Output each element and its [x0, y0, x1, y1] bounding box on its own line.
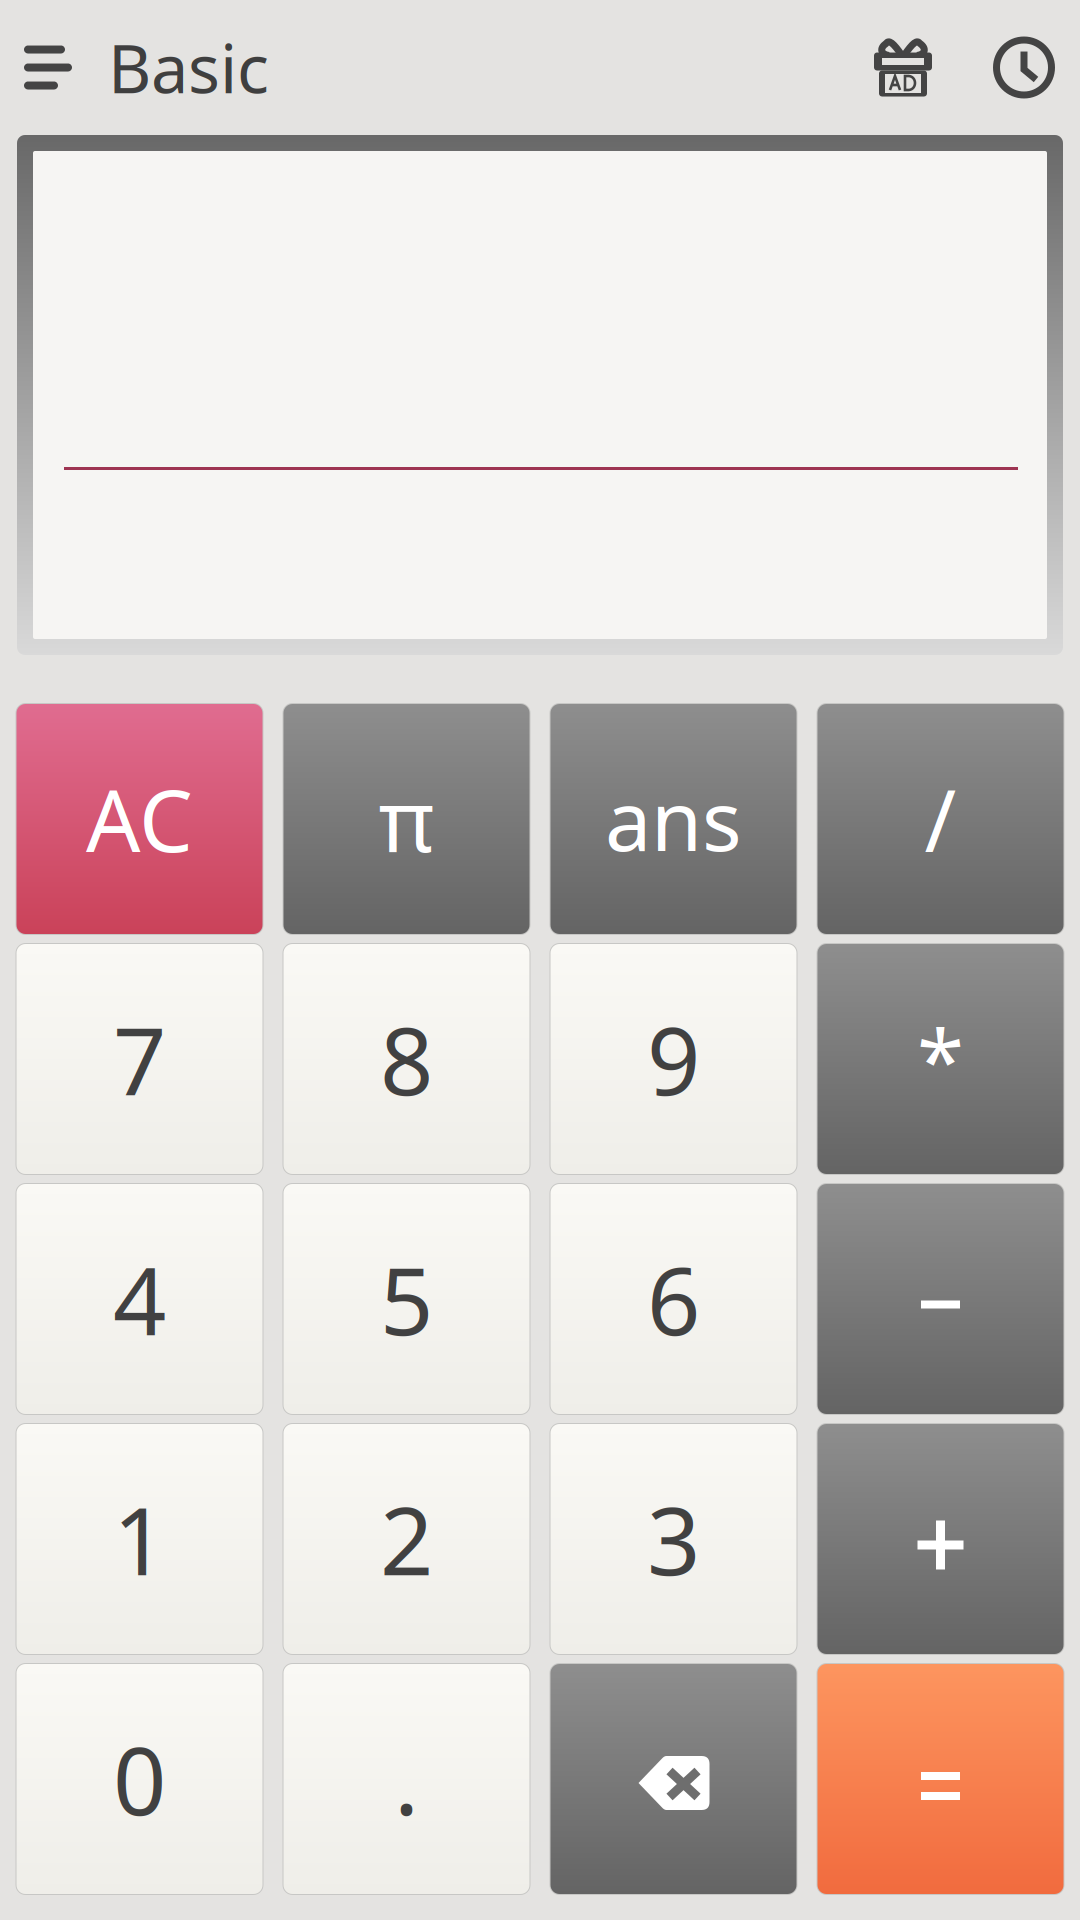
- button[interactable]: π: [283, 704, 529, 934]
- button[interactable]: History: [993, 2, 1080, 132]
- staticText: π: [378, 762, 434, 876]
- button[interactable]: .: [283, 1664, 529, 1894]
- button[interactable]: /: [817, 704, 1063, 934]
- staticText: ans: [605, 764, 742, 874]
- button[interactable]: Ad gift: [874, 2, 993, 132]
- button[interactable]: Plus: [817, 1424, 1063, 1654]
- staticText: *: [917, 1002, 964, 1116]
- button[interactable]: 9: [550, 944, 796, 1174]
- button[interactable]: Menu: [0, 2, 108, 132]
- button[interactable]: 3: [550, 1424, 796, 1654]
- staticText: .: [394, 1717, 419, 1841]
- staticText: AC: [86, 762, 193, 876]
- staticText: 0: [113, 1717, 166, 1841]
- staticText: 5: [380, 1237, 433, 1361]
- staticText: /: [924, 762, 956, 876]
- staticText: 3: [647, 1477, 700, 1601]
- button[interactable]: Backspace: [550, 1664, 796, 1894]
- staticText: 6: [647, 1237, 700, 1361]
- staticText: 4: [113, 1237, 166, 1361]
- button[interactable]: Equals: [817, 1664, 1063, 1894]
- button[interactable]: 7: [16, 944, 262, 1174]
- staticText: 9: [647, 997, 700, 1121]
- button[interactable]: 4: [16, 1184, 262, 1414]
- button[interactable]: AC: [16, 704, 262, 934]
- staticText: 1: [113, 1477, 166, 1601]
- staticText: 2: [380, 1477, 433, 1601]
- button[interactable]: 5: [283, 1184, 529, 1414]
- staticText: 7: [113, 997, 166, 1121]
- button[interactable]: 8: [283, 944, 529, 1174]
- button[interactable]: 2: [283, 1424, 529, 1654]
- button[interactable]: *: [817, 944, 1063, 1174]
- button[interactable]: 6: [550, 1184, 796, 1414]
- button[interactable]: 1: [16, 1424, 262, 1654]
- button[interactable]: ans: [550, 704, 796, 934]
- button[interactable]: Minus: [817, 1184, 1063, 1414]
- staticText: 8: [380, 997, 433, 1121]
- button[interactable]: 0: [16, 1664, 262, 1894]
- staticText: Basic: [108, 23, 269, 112]
